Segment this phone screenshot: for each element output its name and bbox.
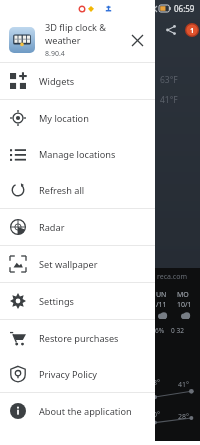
- staticText: 28°: [178, 412, 190, 422]
- button[interactable]: Privacy Policy: [0, 356, 155, 392]
- staticText: 3D flip clock & weather: [45, 21, 123, 47]
- staticText: MO: [177, 290, 189, 300]
- staticText: Radar: [39, 221, 65, 234]
- button[interactable]: Radar: [0, 209, 155, 245]
- staticText: /11: [156, 300, 167, 310]
- staticText: My location: [39, 112, 89, 125]
- staticText: 10/1: [177, 300, 192, 310]
- button[interactable]: Close: [123, 26, 151, 54]
- staticText: 41°: [178, 380, 190, 390]
- staticText: 06:59: [174, 3, 195, 14]
- staticText: UN: [156, 290, 167, 300]
- staticText: 41°F: [160, 94, 178, 106]
- button[interactable]: Refresh all: [0, 172, 155, 208]
- button[interactable]: Manage locations: [0, 136, 155, 172]
- staticText: 0°: [153, 410, 160, 420]
- staticText: 8.90.4: [45, 49, 65, 59]
- staticText: 3°: [153, 378, 160, 388]
- button[interactable]: My location: [0, 100, 155, 136]
- button[interactable]: Notifications: [185, 23, 199, 37]
- staticText: Restore purchases: [39, 332, 119, 345]
- button[interactable]: About the application: [0, 393, 155, 429]
- button[interactable]: Settings: [0, 283, 155, 319]
- button[interactable]: Restore purchases: [0, 320, 155, 356]
- button[interactable]: Share: [163, 22, 179, 38]
- staticText: 1: [190, 26, 194, 35]
- staticText: 0 32: [171, 326, 184, 335]
- staticText: Set wallpaper: [39, 258, 98, 271]
- button[interactable]: Widgets: [0, 63, 155, 99]
- staticText: Manage locations: [39, 148, 116, 161]
- button[interactable]: Set wallpaper: [0, 246, 155, 282]
- staticText: Refresh all: [39, 184, 85, 197]
- staticText: reca.com: [157, 272, 188, 282]
- staticText: 6%: [155, 326, 165, 335]
- staticText: Widgets: [39, 75, 75, 88]
- staticText: Privacy Policy: [39, 368, 97, 381]
- button[interactable]: 3D flip clock & weather: [0, 17, 155, 62]
- staticText: Settings: [39, 295, 74, 308]
- staticText: 63°F: [160, 74, 178, 86]
- staticText: About the application: [39, 405, 132, 418]
